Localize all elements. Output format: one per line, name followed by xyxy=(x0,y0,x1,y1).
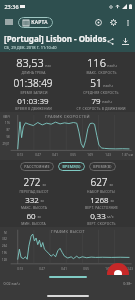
staticText: м xyxy=(37,214,41,220)
staticText: 116 xyxy=(5,121,10,125)
staticText: 0:41 xyxy=(61,267,67,271)
staticText: 1268 xyxy=(90,194,109,205)
staticText: 627 xyxy=(90,175,108,189)
staticText: 1:37 ч:м xyxy=(122,153,133,157)
staticText: 0:13 xyxy=(17,153,23,157)
button[interactable]: Settings xyxy=(106,15,121,30)
staticText: км/ч xyxy=(103,83,113,89)
button[interactable]: ВРЕМЯ(B) xyxy=(89,162,116,171)
staticText: 332 xyxy=(25,194,39,205)
button[interactable]: Record xyxy=(107,263,129,285)
button[interactable]: More options xyxy=(121,16,134,29)
staticText: [Portugal] Lisbon - Obidos xyxy=(4,33,107,44)
staticText: СР. СКОРОСТЬ В ДВИЖЕНИИ xyxy=(76,106,126,110)
staticText: 87 xyxy=(6,128,10,132)
staticText: ВРЕМЯ В ДВИЖЕНИИ xyxy=(15,106,52,110)
staticText: КМ/Ч xyxy=(3,115,10,119)
staticText: 332 xyxy=(2,237,7,241)
staticText: ВРЕМЯ(B) xyxy=(93,164,112,169)
staticText: 0:55 xyxy=(70,153,76,157)
staticText: 116 xyxy=(87,55,106,70)
staticText: ДЛИНА ТРЕКА xyxy=(21,70,46,74)
staticText: 264 xyxy=(2,244,7,248)
staticText: МАКС. СКОРОСТЬ xyxy=(86,70,117,74)
staticText: 1:09 xyxy=(87,153,93,157)
button[interactable]: РАССТОЯНИЕ xyxy=(20,162,54,171)
staticText: 128 xyxy=(2,258,7,262)
button[interactable]: ВРЕМЯ(S) xyxy=(58,162,85,171)
staticText: 01:03:39 xyxy=(17,95,49,106)
staticText: м xyxy=(110,198,114,204)
button[interactable]: Share xyxy=(103,34,118,49)
staticText: РАССТОЯНИЕ xyxy=(24,164,50,169)
staticText: 1:09 xyxy=(105,267,111,271)
staticText: 79 xyxy=(91,95,101,106)
staticText: КАРТА xyxy=(31,19,48,26)
staticText: М xyxy=(4,231,7,235)
staticText: СРЕДНЯЯ СКОРОСТЬ xyxy=(83,90,119,94)
staticText: 58 xyxy=(6,135,10,139)
staticText: ПЕРЕПАД ВЫСОТ xyxy=(19,189,49,193)
staticText: ВРЕМЯ ЗАПИСИ xyxy=(20,90,48,94)
staticText: 0:38ᵇ xyxy=(123,281,132,286)
staticText: 0:13 xyxy=(17,267,23,271)
staticText: 0:55 xyxy=(83,267,89,271)
staticText: 0:02 км/ч xyxy=(3,281,20,286)
staticText: 0:41 xyxy=(52,153,58,157)
staticText: 1:23 xyxy=(127,267,133,271)
staticText: 272 xyxy=(23,175,41,189)
staticText: 29,01 xyxy=(2,142,10,146)
staticText: 51 xyxy=(90,76,102,90)
staticText: ВЕРТ. СКОРОСТЬ xyxy=(87,221,116,225)
staticText: м xyxy=(42,182,46,188)
staticText: СБ, 29 ДЕК. 2018 Г. 11:10:40 xyxy=(4,45,57,50)
staticText: ВРЕМЯ(S) xyxy=(62,164,81,169)
staticText: 0,33 xyxy=(90,210,106,221)
staticText: км/ч xyxy=(107,63,117,69)
staticText: км/ч xyxy=(102,99,112,105)
staticText: 196 xyxy=(2,251,7,255)
staticText: ГРАФИК СКОРОСТЕЙ xyxy=(45,114,90,119)
staticText: 83,53 xyxy=(16,55,44,70)
staticText: МИН. ВЫСОТА xyxy=(21,221,46,225)
button[interactable]: Location xyxy=(91,15,106,30)
staticText: 0:27 xyxy=(35,153,41,157)
button[interactable]: КАРТА xyxy=(18,17,53,28)
staticText: 23:36 xyxy=(4,3,19,10)
staticText: м xyxy=(109,182,113,188)
staticText: ВЕРТ. РАССТОЯНИЕ xyxy=(85,205,118,209)
staticText: м xyxy=(40,198,44,204)
staticText: МАКС. ВЫСОТА xyxy=(21,205,47,209)
staticText: км xyxy=(45,63,51,69)
staticText: 01:38:49 xyxy=(13,76,53,90)
button[interactable]: Menu xyxy=(2,15,16,29)
staticText: НАБОР ВЫСОТЫ xyxy=(87,189,115,193)
staticText: ГРАФИК ВЫСОТ xyxy=(51,229,85,234)
staticText: м/с xyxy=(107,214,114,220)
button[interactable]: Download xyxy=(118,34,133,49)
staticText: 1:23 xyxy=(105,153,111,157)
staticText: 60 xyxy=(26,210,36,221)
staticText: 0:27 xyxy=(39,267,45,271)
